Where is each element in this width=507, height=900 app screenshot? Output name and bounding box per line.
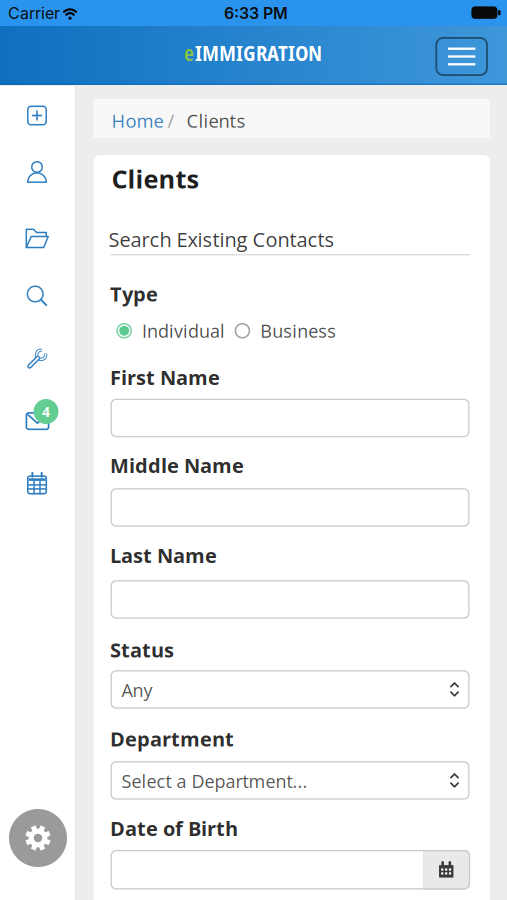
button[interactable]: Messages [21, 399, 59, 434]
staticText: Business [260, 318, 336, 343]
button[interactable]: Status: Any [110, 670, 469, 709]
button[interactable]: Calendar [25, 471, 49, 495]
staticText: First Name [110, 363, 220, 391]
staticText: 6:33 PM [224, 3, 288, 23]
button[interactable]: Search [25, 284, 49, 308]
button[interactable]: Contacts [25, 160, 49, 184]
button[interactable]: Add [25, 103, 49, 127]
button[interactable]: Settings [9, 809, 67, 867]
button[interactable]: Individual [116, 318, 225, 343]
staticText: e [184, 39, 194, 67]
staticText: Home [111, 108, 163, 133]
staticText: Date of Birth [110, 814, 238, 842]
staticText: Status [110, 636, 174, 663]
staticText: Clients [111, 161, 199, 196]
staticText: Search Existing Contacts [108, 225, 334, 253]
staticText: Clients [186, 108, 245, 133]
button[interactable]: First Name [110, 399, 469, 437]
staticText: Individual [142, 318, 225, 343]
staticText: Department [110, 725, 234, 752]
staticText: / [167, 108, 174, 133]
button[interactable]: Menu [435, 37, 488, 76]
button[interactable]: Tools [25, 347, 49, 371]
staticText: Middle Name [110, 451, 244, 479]
staticText: Carrier [8, 3, 60, 23]
button[interactable]: Department: Select a Department [110, 761, 469, 800]
staticText: Last Name [110, 541, 217, 569]
staticText: 4 [42, 402, 50, 421]
staticText: IMMIGRATION [195, 39, 322, 67]
button[interactable]: Date of Birth [110, 850, 469, 889]
button[interactable]: Cases [25, 226, 49, 250]
button[interactable]: Business [235, 318, 336, 343]
button[interactable]: Last Name [110, 580, 469, 619]
button[interactable]: Pick date [423, 850, 469, 889]
staticText: Any [121, 678, 152, 702]
staticText: Select a Department... [121, 769, 307, 793]
button[interactable]: Home [111, 108, 163, 133]
staticText: Type [110, 280, 158, 307]
button[interactable]: Middle Name [110, 488, 469, 527]
